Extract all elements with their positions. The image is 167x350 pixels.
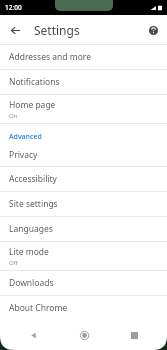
staticText: Privacy — [9, 149, 38, 161]
staticText: About Chrome — [9, 302, 68, 314]
staticText: Accessibility — [9, 173, 57, 185]
button[interactable]: Recent apps — [123, 324, 145, 346]
staticText: Downloads — [9, 277, 54, 289]
staticText: Site settings — [9, 198, 58, 210]
button[interactable]: Accessibility — [0, 167, 167, 191]
staticText: Settings — [34, 22, 80, 38]
staticText: Advanced — [9, 132, 42, 142]
button[interactable]: Addresses and more — [0, 45, 167, 69]
button[interactable]: Notifications — [0, 70, 167, 94]
button[interactable]: Lite mode — [0, 242, 167, 270]
button[interactable]: Site settings — [0, 192, 167, 216]
staticText: On — [9, 112, 18, 120]
staticText: Home page — [9, 99, 56, 111]
button[interactable]: Help — [143, 20, 163, 40]
button[interactable]: Home — [73, 324, 95, 346]
button[interactable]: About Chrome — [0, 296, 167, 320]
button[interactable]: Languages — [0, 217, 167, 241]
staticText: Off — [9, 259, 18, 267]
button[interactable]: Back — [22, 324, 44, 346]
staticText: Addresses and more — [9, 51, 91, 63]
button[interactable]: Home page — [0, 95, 167, 123]
staticText: Lite mode — [9, 246, 49, 258]
button[interactable]: Privacy — [0, 144, 167, 166]
staticText: Languages — [9, 223, 53, 235]
staticText: Notifications — [9, 76, 60, 88]
button[interactable]: Back — [4, 19, 26, 41]
button[interactable]: Downloads — [0, 271, 167, 295]
staticText: 12:00 — [5, 3, 22, 12]
